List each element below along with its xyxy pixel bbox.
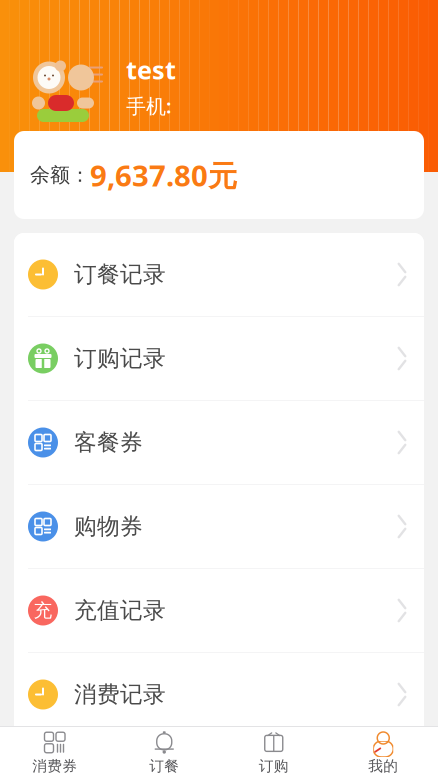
button[interactable]: 购物券 xyxy=(14,485,424,569)
staticText: 我的 xyxy=(368,757,398,775)
staticText: 客餐券 xyxy=(74,429,143,456)
staticText: 9,637.80元 xyxy=(90,155,237,194)
staticText: 订购 xyxy=(259,757,289,775)
button[interactable]: 消费记录 xyxy=(14,653,424,736)
staticText: 订餐 xyxy=(149,757,179,775)
button[interactable]: 客餐券 xyxy=(14,401,424,485)
staticText: 手机: xyxy=(126,92,172,119)
staticText: 消费券 xyxy=(32,757,77,775)
staticText: 购物券 xyxy=(74,513,143,540)
button[interactable]: 订餐 xyxy=(109,727,219,779)
staticText: 订餐记录 xyxy=(74,261,166,288)
button[interactable]: 我的 xyxy=(328,727,438,779)
staticText: 充 xyxy=(33,599,52,622)
staticText: 余额： xyxy=(30,163,90,187)
button[interactable]: 订购 xyxy=(219,727,328,779)
staticText: 订购记录 xyxy=(74,345,166,372)
button[interactable]: 订餐记录 xyxy=(14,233,424,317)
staticText: 消费记录 xyxy=(74,681,166,708)
staticText: test xyxy=(126,53,176,86)
staticText: 充值记录 xyxy=(74,597,166,624)
button[interactable]: 消费券 xyxy=(0,727,109,779)
button[interactable]: 充 xyxy=(14,569,424,653)
button[interactable]: 订购记录 xyxy=(14,317,424,401)
